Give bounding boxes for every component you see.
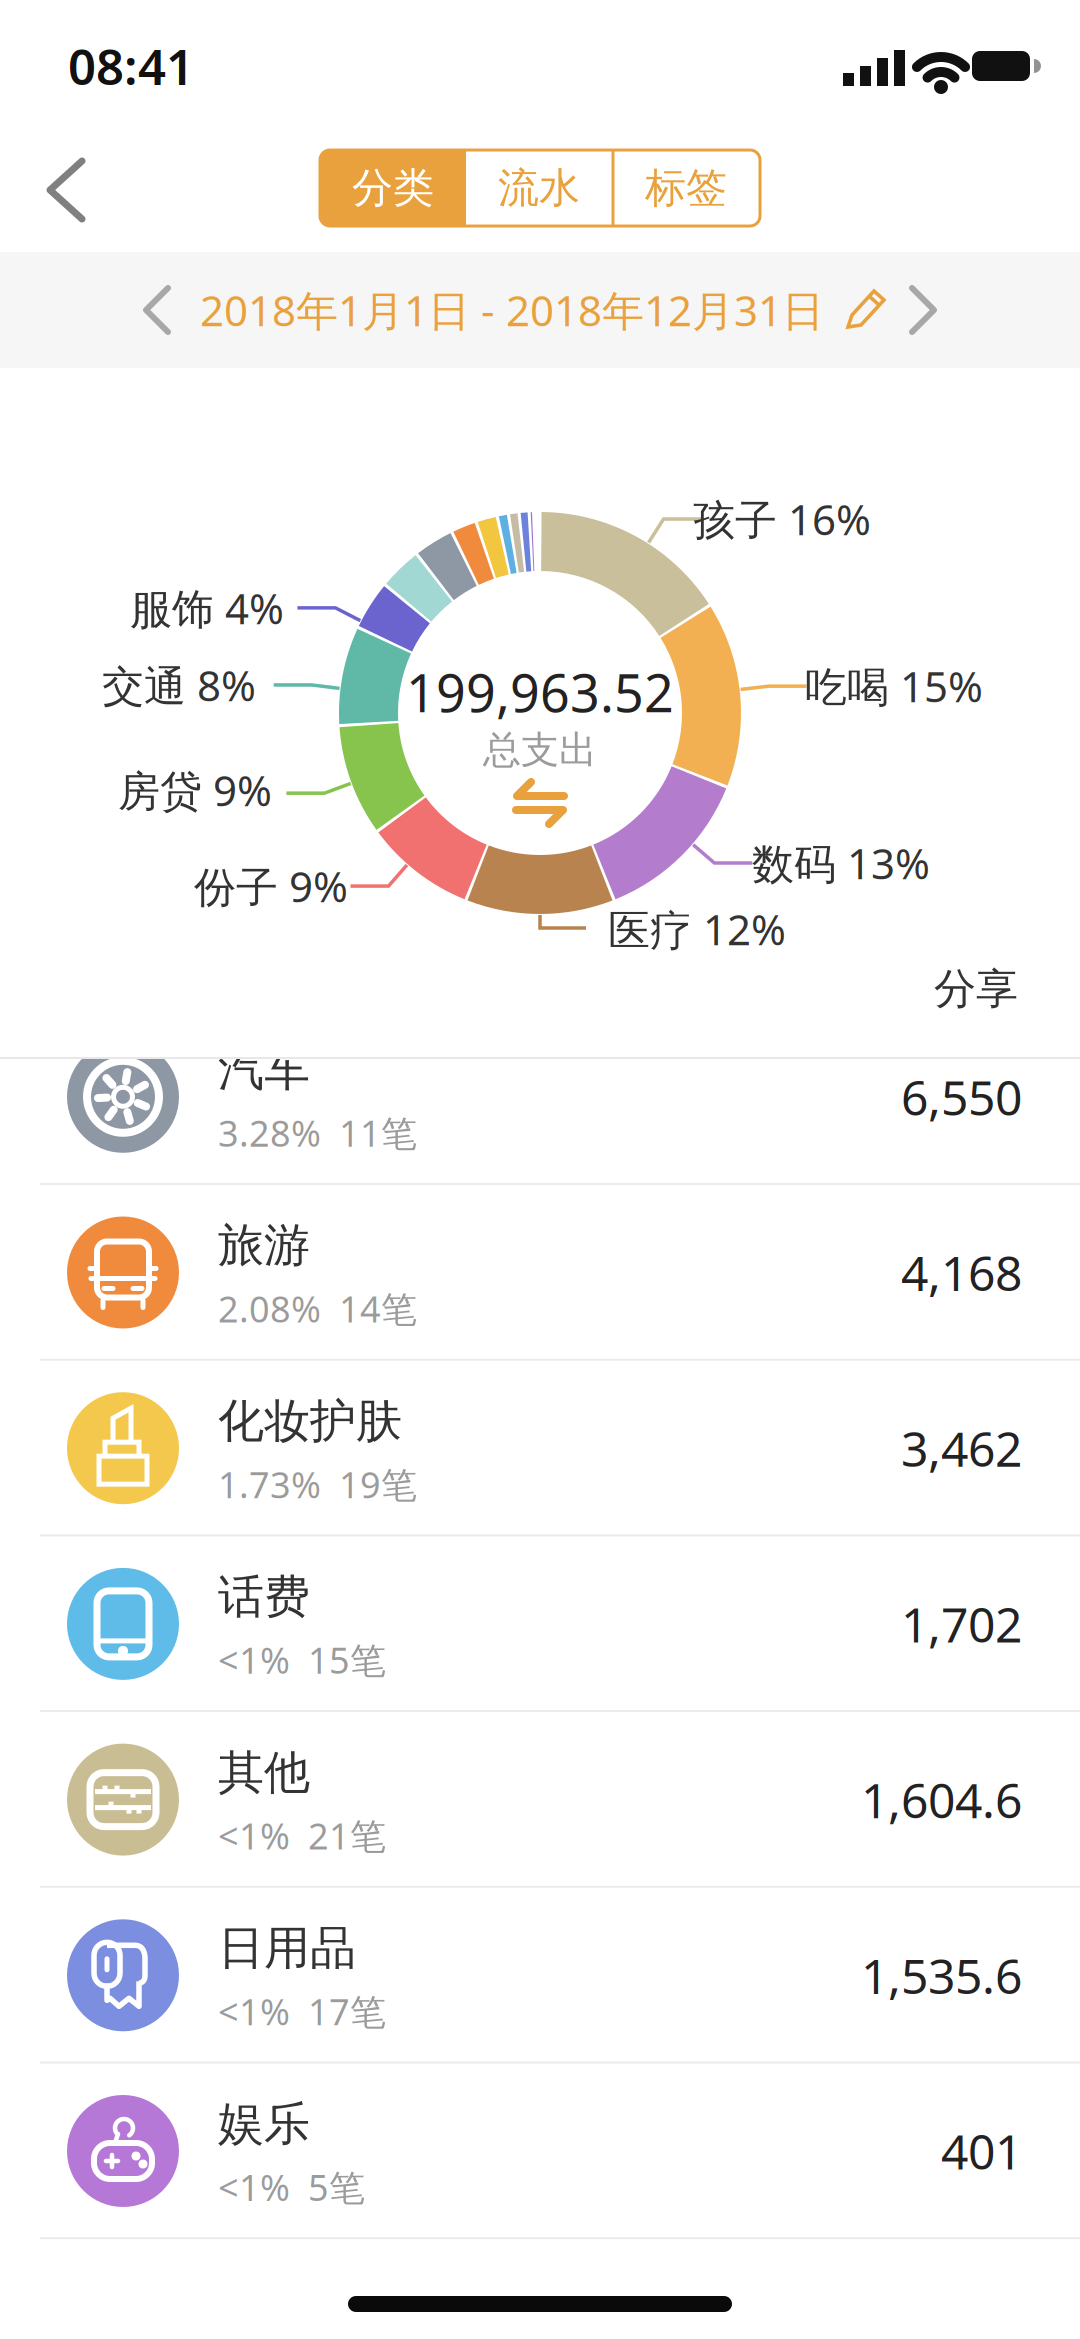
button[interactable]: 分类 <box>320 150 466 226</box>
staticText: 1.73% 19笔 <box>218 1460 417 1509</box>
staticText: 吃喝 15% <box>805 657 983 715</box>
staticText: 1,535.6 <box>861 1943 1022 2008</box>
staticText: 房贷 9% <box>118 761 272 819</box>
button[interactable]: 流水 <box>466 150 612 226</box>
button[interactable]: 娱乐 <box>0 2063 1080 2239</box>
button[interactable]: 话费 <box>0 1536 1080 1712</box>
staticText: 孩子 16% <box>693 490 871 548</box>
staticText: 总支出 <box>483 726 597 774</box>
staticText: 旅游 <box>218 1216 310 1274</box>
button[interactable]: Next period <box>908 285 938 335</box>
staticText: 08:41 <box>68 33 194 99</box>
staticText: 3,462 <box>901 1415 1022 1481</box>
staticText: 分类 <box>352 162 434 214</box>
staticText: <1% 21笔 <box>218 1811 386 1860</box>
button[interactable]: 旅游 <box>0 1184 1080 1360</box>
staticText: 4,168 <box>901 1240 1022 1305</box>
staticText: 3.28% 11笔 <box>218 1108 417 1157</box>
staticText: 服饰 4% <box>130 579 284 637</box>
staticText: 话费 <box>218 1568 310 1626</box>
staticText: 401 <box>941 2118 1022 2184</box>
staticText: 交通 8% <box>102 656 256 714</box>
staticText: 其他 <box>218 1744 310 1801</box>
staticText: 化妆护肤 <box>218 1392 402 1450</box>
button[interactable]: 标签 <box>612 150 760 226</box>
button[interactable]: 分享 <box>818 962 1018 1015</box>
button[interactable]: Previous period <box>142 285 172 335</box>
button[interactable]: Back <box>45 157 87 223</box>
staticText: 分享 <box>934 962 1018 1015</box>
staticText: 6,550 <box>901 1064 1022 1129</box>
button[interactable]: Edit date range <box>200 281 888 339</box>
button[interactable]: 汽车 <box>0 1009 1080 1184</box>
staticText: 娱乐 <box>218 2095 310 2153</box>
staticText: 流水 <box>498 162 580 214</box>
staticText: <1% 15笔 <box>218 1635 386 1684</box>
staticText: 医疗 12% <box>608 900 786 958</box>
staticText: 1,702 <box>901 1591 1022 1657</box>
button[interactable]: 化妆护肤 <box>0 1360 1080 1536</box>
staticText: <1% 5笔 <box>218 2162 365 2211</box>
staticText: 标签 <box>645 162 727 214</box>
staticText: 1,604.6 <box>861 1767 1022 1832</box>
staticText: 数码 13% <box>752 834 930 892</box>
button[interactable]: 其他 <box>0 1712 1080 1887</box>
staticText: 2018年1月1日 - 2018年12月31日 <box>200 281 824 339</box>
button[interactable]: 日用品 <box>0 1887 1080 2063</box>
staticText: 份子 9% <box>194 857 348 915</box>
staticText: 汽车 <box>218 1041 310 1099</box>
staticText: 2.08% 14笔 <box>218 1284 417 1333</box>
staticText: <1% 17笔 <box>218 1987 386 2036</box>
staticText: 日用品 <box>218 1919 356 1977</box>
staticText: 199,963.52 <box>406 657 674 727</box>
